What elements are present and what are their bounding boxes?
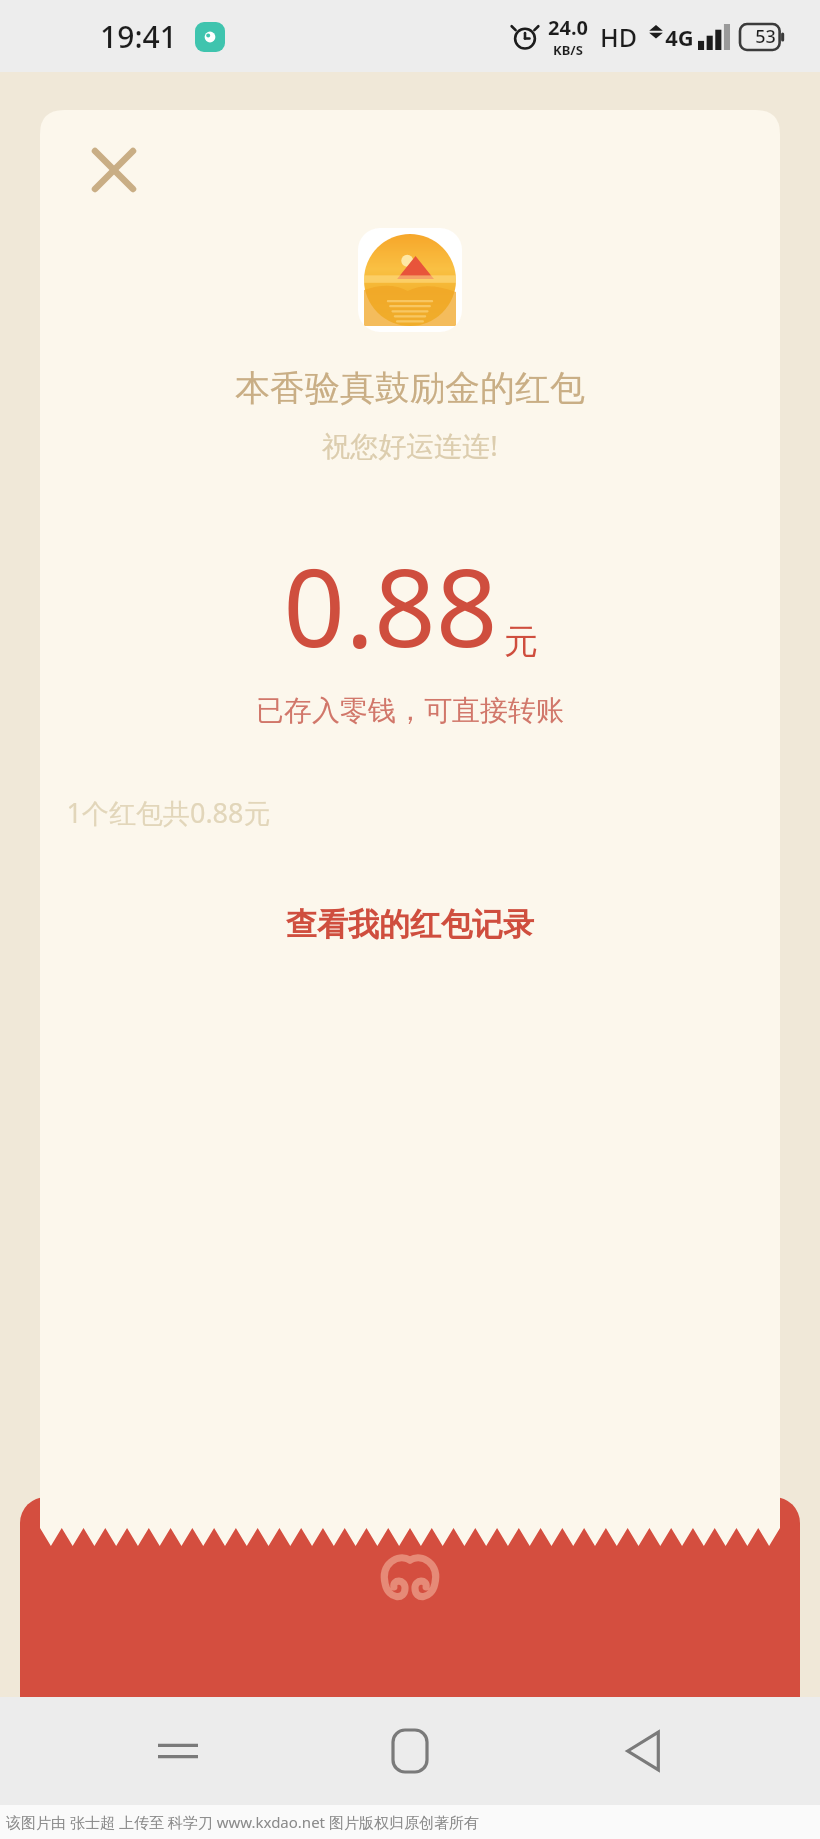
button[interactable]: Recent apps [123, 1697, 233, 1805]
staticText: 本香验真鼓励金的红包 [235, 366, 585, 410]
staticText: 祝您好运连连! [322, 426, 498, 464]
button[interactable]: Sender avatar [358, 228, 462, 332]
staticText: 4G [665, 22, 694, 52]
staticText: KB/S [553, 41, 583, 59]
staticText: 已存入零钱，可直接转账 [256, 693, 564, 728]
button[interactable]: Back [588, 1697, 698, 1805]
staticText: 该图片由 张士超 上传至 科学刀 www.kxdao.net 图片版权归原创著所… [6, 1812, 479, 1832]
staticText: 查看我的红包记录 [286, 905, 534, 944]
staticText: 元 [504, 620, 538, 663]
staticText: 0.88 [283, 532, 498, 679]
staticText: 53 [755, 24, 776, 49]
staticText: 19:41 [100, 16, 177, 57]
button[interactable]: 查看我的红包记录 [246, 893, 574, 956]
staticText: HD [600, 20, 637, 54]
button[interactable]: Home [355, 1697, 465, 1805]
button[interactable]: Close [76, 132, 152, 208]
staticText: 1个红包共0.88元 [66, 794, 271, 831]
staticText: 24.0 [548, 14, 588, 41]
